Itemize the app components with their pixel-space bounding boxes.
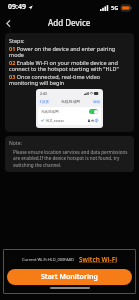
staticText: 2:43 [40, 91, 47, 96]
staticText: Steps: [9, 37, 25, 44]
staticText: 01 Power on the device and enter pairing… [9, 45, 130, 59]
button[interactable]: Switch Wi-Fi [78, 254, 118, 265]
button[interactable]: Back [0, 15, 16, 31]
staticText: 无线局域网 [61, 99, 80, 104]
staticText: Note: [9, 140, 22, 147]
staticText: 设置 [42, 100, 49, 104]
staticText: 无线局域网 [41, 110, 59, 114]
staticText: 09:49 [8, 2, 26, 12]
staticText: Current Wi-Fi:HLD_000FA8D [22, 257, 75, 262]
staticText: Start Monitoring [41, 272, 98, 282]
staticText: 03 Once connected, real-time video monit… [9, 73, 130, 87]
button[interactable]: 无线局域网 [38, 107, 101, 116]
staticText: HLD_xxxxxx [46, 119, 64, 123]
staticText: 编辑 [93, 100, 100, 104]
button[interactable]: HLD_xxxxxx [38, 116, 101, 125]
staticText: Switch Wi-Fi [79, 255, 117, 264]
staticText: 02 Enable Wi-Fi on your mobile device an… [9, 59, 130, 73]
staticText: Please ensure location services and data… [13, 149, 130, 168]
button[interactable]: Start Monitoring [7, 269, 132, 285]
staticText: 5G [111, 4, 119, 11]
staticText: Add Device [48, 17, 91, 28]
